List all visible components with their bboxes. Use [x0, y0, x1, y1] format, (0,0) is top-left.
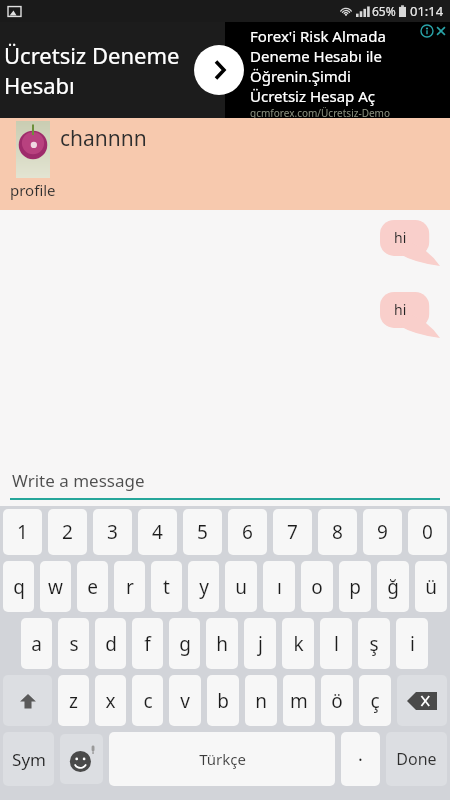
staticText: hi	[394, 228, 407, 247]
button[interactable]: v	[169, 675, 201, 726]
button[interactable]: 0	[408, 509, 447, 555]
staticText: k	[293, 631, 304, 657]
staticText: 01:14	[410, 2, 444, 20]
button[interactable]: f	[132, 618, 163, 669]
button[interactable]: Write a message	[12, 469, 450, 492]
button[interactable]: ğ	[377, 561, 409, 612]
button[interactable]: Sym	[3, 732, 54, 786]
button[interactable]: j	[244, 618, 276, 669]
button[interactable]: Done	[386, 732, 447, 786]
staticText: 3	[107, 519, 118, 545]
staticText: f	[144, 631, 151, 657]
button[interactable]: ü	[415, 561, 447, 612]
button[interactable]: hi	[380, 220, 440, 266]
staticText: Öğrenin.Şimdi	[250, 66, 351, 86]
button[interactable]: x	[95, 675, 126, 726]
button[interactable]: i	[396, 618, 428, 669]
staticText: u	[235, 574, 247, 600]
staticText: 4	[152, 519, 163, 545]
button[interactable]: ş	[358, 618, 390, 669]
staticText: Done	[396, 748, 437, 770]
staticText: ü	[425, 574, 437, 600]
button[interactable]: ·	[341, 732, 380, 786]
staticText: ö	[331, 688, 343, 714]
button[interactable]: z	[58, 675, 89, 726]
staticText: ç	[370, 688, 380, 714]
button[interactable]: 2	[48, 509, 87, 555]
staticText: Sym	[12, 748, 46, 771]
button[interactable]: g	[169, 618, 200, 669]
staticText: 6	[242, 519, 253, 545]
staticText: x	[105, 688, 116, 714]
button[interactable]: Close ad	[434, 24, 448, 38]
staticText: d	[105, 631, 117, 657]
staticText: i	[410, 631, 415, 657]
button[interactable]: Ad info	[420, 24, 434, 38]
staticText: ş	[369, 631, 379, 657]
button[interactable]: q	[3, 561, 34, 612]
button[interactable]: 5	[183, 509, 222, 555]
button[interactable]: u	[225, 561, 257, 612]
button[interactable]: Türkçe	[109, 732, 335, 786]
button[interactable]: r	[114, 561, 145, 612]
button[interactable]: 7	[273, 509, 312, 555]
staticText: t	[163, 574, 170, 600]
button[interactable]: p	[339, 561, 371, 612]
button[interactable]: Shift	[3, 675, 52, 726]
button[interactable]: channnn	[0, 118, 450, 210]
button[interactable]: c	[132, 675, 163, 726]
staticText: Forex'i Risk Almada	[250, 26, 386, 46]
button[interactable]: ö	[321, 675, 353, 726]
button[interactable]: ı	[263, 561, 295, 612]
staticText: ı	[277, 574, 282, 600]
staticText: s	[69, 631, 79, 657]
staticText: e	[87, 574, 98, 600]
button[interactable]: y	[188, 561, 219, 612]
staticText: 7	[287, 519, 298, 545]
staticText: 8	[332, 519, 343, 545]
staticText: h	[216, 631, 228, 657]
button[interactable]: 4	[138, 509, 177, 555]
staticText: Türkçe	[199, 749, 246, 769]
button[interactable]: w	[40, 561, 71, 612]
button[interactable]: l	[320, 618, 352, 669]
button[interactable]: Emoji	[60, 734, 103, 784]
button[interactable]: n	[245, 675, 277, 726]
button[interactable]: m	[283, 675, 315, 726]
button[interactable]: 1	[3, 509, 42, 555]
staticText: r	[126, 574, 134, 600]
staticText: b	[217, 688, 229, 714]
staticText: 1	[17, 519, 28, 545]
button[interactable]: d	[95, 618, 126, 669]
button[interactable]: Advertisement	[0, 22, 450, 118]
button[interactable]: hi	[380, 292, 440, 338]
staticText: Ücretsiz Hesap Aç	[250, 86, 376, 106]
button[interactable]: 6	[228, 509, 267, 555]
staticText: w	[48, 574, 63, 600]
staticText: g	[179, 631, 191, 657]
button[interactable]: b	[207, 675, 239, 726]
staticText: y	[199, 574, 209, 600]
button[interactable]: 9	[363, 509, 402, 555]
staticText: channnn	[60, 124, 147, 153]
staticText: Ücretsiz Deneme	[4, 40, 180, 70]
button[interactable]: o	[301, 561, 333, 612]
staticText: l	[334, 631, 339, 657]
staticText: Deneme Hesabı ile	[250, 46, 382, 66]
staticText: ·	[358, 747, 363, 772]
button[interactable]: t	[151, 561, 182, 612]
staticText: m	[290, 688, 308, 714]
button[interactable]: Backspace	[397, 675, 447, 726]
button[interactable]: k	[282, 618, 314, 669]
button[interactable]: e	[77, 561, 108, 612]
staticText: 65%	[372, 3, 396, 19]
button[interactable]: ç	[359, 675, 391, 726]
staticText: n	[255, 688, 267, 714]
button[interactable]: h	[206, 618, 238, 669]
button[interactable]: a	[21, 618, 52, 669]
button[interactable]: s	[58, 618, 89, 669]
staticText: gcmforex.com/Ücretsiz-Demo	[250, 106, 390, 118]
button[interactable]: 8	[318, 509, 357, 555]
button[interactable]: 3	[93, 509, 132, 555]
staticText: 0	[422, 519, 433, 545]
